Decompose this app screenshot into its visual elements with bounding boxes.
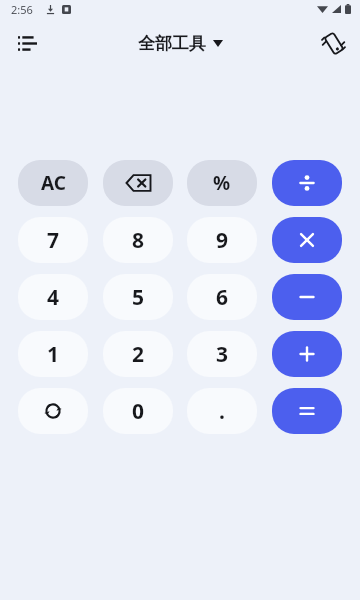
button[interactable]: 0	[103, 388, 173, 434]
button[interactable]: .	[187, 388, 257, 434]
staticText: 4	[47, 283, 60, 312]
button[interactable]: 5	[103, 274, 173, 320]
staticText: 7	[47, 226, 60, 255]
staticText: 0	[132, 397, 145, 426]
staticText: 8	[132, 226, 145, 255]
button[interactable]: Plus	[272, 331, 342, 377]
button[interactable]: Convert	[18, 388, 88, 434]
button[interactable]: Multiply	[272, 217, 342, 263]
button[interactable]: Minus	[272, 274, 342, 320]
button[interactable]: Divide	[272, 160, 342, 206]
staticText: AC	[41, 170, 66, 196]
staticText: 6	[216, 283, 229, 312]
button[interactable]: Shake to calculate	[312, 22, 354, 64]
staticText: 2:56	[11, 2, 33, 17]
button[interactable]: Backspace	[103, 160, 173, 206]
button[interactable]: 3	[187, 331, 257, 377]
button[interactable]: AC	[18, 160, 88, 206]
button[interactable]: 8	[103, 217, 173, 263]
staticText: 3	[216, 340, 229, 369]
button[interactable]: 全部工具	[132, 29, 229, 58]
staticText: .	[219, 397, 225, 426]
button[interactable]: Equals	[272, 388, 342, 434]
button[interactable]: 1	[18, 331, 88, 377]
staticText: 2	[132, 340, 145, 369]
button[interactable]: Menu	[6, 22, 48, 64]
button[interactable]: 2	[103, 331, 173, 377]
button[interactable]: 7	[18, 217, 88, 263]
button[interactable]: 4	[18, 274, 88, 320]
staticText: 5	[132, 283, 145, 312]
staticText: 全部工具	[138, 33, 206, 54]
button[interactable]: 6	[187, 274, 257, 320]
button[interactable]: %	[187, 160, 257, 206]
staticText: 9	[216, 226, 229, 255]
staticText: 1	[47, 340, 60, 369]
staticText: %	[213, 170, 231, 196]
button[interactable]: 9	[187, 217, 257, 263]
